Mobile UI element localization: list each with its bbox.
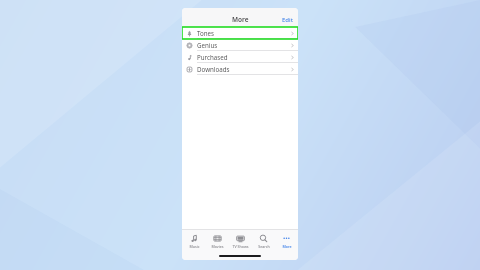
button[interactable]: Movies	[206, 230, 229, 252]
staticText: Music	[189, 244, 200, 249]
button[interactable]: TV Shows	[229, 230, 252, 252]
button[interactable]: Purchased	[182, 51, 298, 63]
staticText: Search	[258, 244, 270, 249]
staticText: More	[282, 244, 292, 249]
button[interactable]: Music	[182, 230, 206, 252]
staticText: TV Shows	[232, 244, 249, 249]
staticText: Purchased	[197, 53, 290, 61]
button[interactable]: More	[275, 230, 298, 252]
staticText: Genius	[197, 41, 290, 49]
staticText: Movies	[211, 244, 224, 249]
button[interactable]: Genius	[182, 39, 298, 51]
staticText: Edit	[282, 16, 293, 24]
button[interactable]: Edit	[277, 14, 298, 26]
staticText: More	[232, 15, 249, 24]
button[interactable]: Tones	[182, 27, 298, 39]
button[interactable]: Search	[252, 230, 275, 252]
staticText: Tones	[197, 29, 290, 37]
staticText: Downloads	[197, 65, 290, 73]
button[interactable]: Downloads	[182, 63, 298, 75]
